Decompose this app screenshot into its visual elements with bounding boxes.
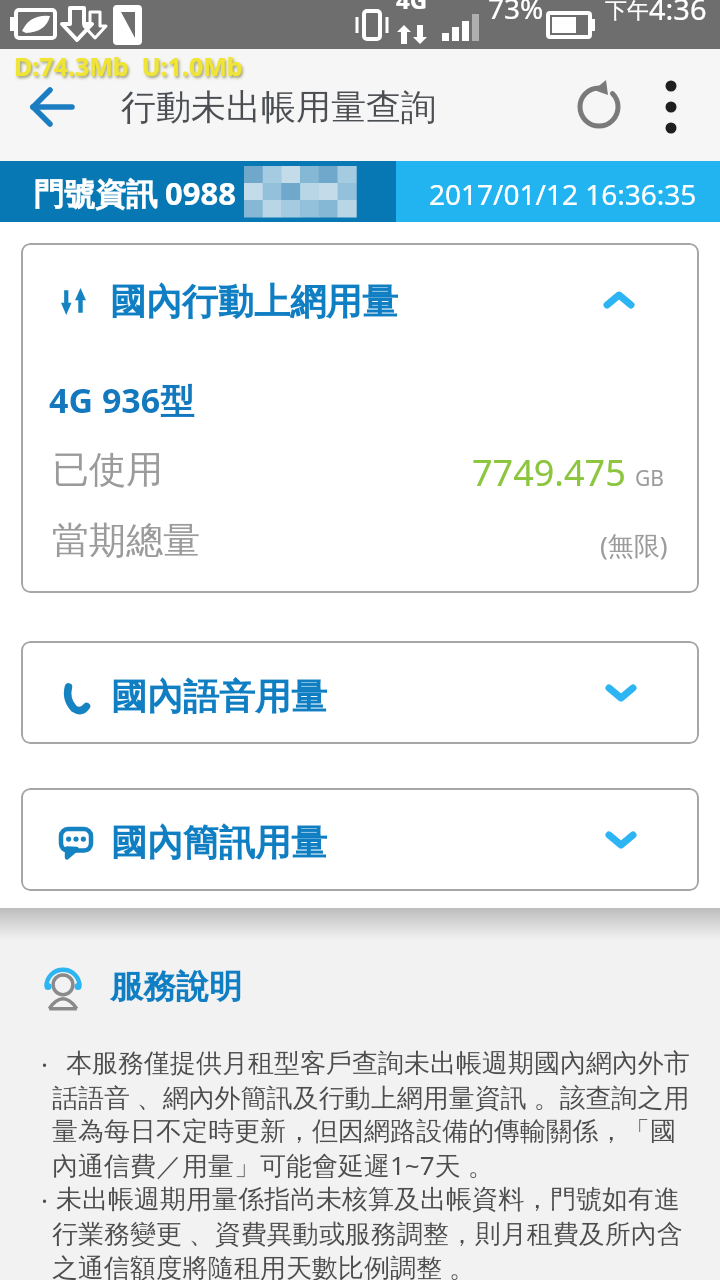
staticText: 4G 936型 [49, 377, 195, 423]
staticText: · [41, 1046, 48, 1081]
staticText: · [41, 1182, 48, 1217]
staticText: 量為每日不定時更新，但因網路設備的傳輸關係，「國 [52, 1115, 676, 1148]
staticText: 未出帳週期用量係指尚未核算及出帳資料，門號如有進 [56, 1183, 680, 1216]
staticText: 本服務僅提供月租型客戶查詢未出帳週期國內網內外市 [66, 1047, 690, 1080]
staticText: (無限) [600, 527, 668, 563]
staticText: D:74.3Mb U:1.0Mb [14, 49, 243, 83]
staticText: 服務說明 [110, 966, 242, 1008]
staticText: 行業務變更 、資費異動或服務調整，則月租費及所內含 [52, 1215, 683, 1251]
button[interactable] [21, 788, 699, 891]
staticText: 下午 [605, 0, 649, 25]
staticText: 國內語音用量 [111, 674, 327, 719]
staticText: 行動未出帳用量查詢 [121, 85, 436, 129]
staticText: 內通信費／用量」可能會延遲1~7天 。 [52, 1147, 494, 1183]
button[interactable] [18, 80, 88, 136]
staticText: 7749.475 [472, 448, 626, 497]
staticText: 門號資訊 0988 [33, 172, 236, 214]
staticText: GB [635, 464, 664, 493]
button[interactable] [572, 80, 626, 134]
staticText: 當期總量 [52, 517, 200, 564]
staticText: 2017/01/12 16:36:35 [429, 175, 697, 213]
staticText: 已使用 [52, 446, 163, 493]
staticText: 國內行動上網用量 [110, 279, 398, 324]
staticText: 國內簡訊用量 [111, 820, 327, 865]
button[interactable] [648, 76, 694, 138]
button[interactable] [21, 641, 699, 744]
staticText: 4:36 [649, 0, 707, 28]
staticText: 之通信額度將隨租用天數比例調整 。 [52, 1249, 475, 1280]
button[interactable] [21, 243, 699, 343]
staticText: 話語音 、網內外簡訊及行動上網用量資訊 。該查詢之用 [52, 1079, 690, 1115]
staticText: 4G [396, 0, 428, 16]
staticText: 73% [488, 0, 544, 27]
